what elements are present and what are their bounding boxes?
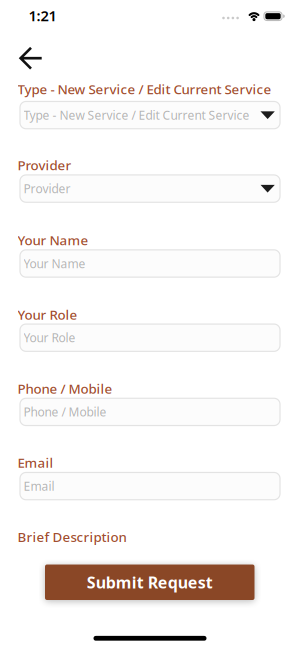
staticText: Provider bbox=[17, 156, 71, 174]
staticText: Phone / Mobile bbox=[23, 404, 106, 420]
staticText: Submit Request bbox=[87, 572, 213, 593]
staticText: Phone / Mobile bbox=[17, 380, 112, 397]
staticText: Email bbox=[17, 454, 53, 471]
staticText: 1:21 bbox=[28, 6, 56, 25]
button[interactable]: Your Role bbox=[20, 324, 280, 351]
staticText: Brief Description bbox=[17, 528, 126, 546]
button[interactable]: Your Name bbox=[20, 250, 280, 277]
staticText: Your Role bbox=[23, 330, 75, 346]
staticText: Type - New Service / Edit Current Servic… bbox=[17, 80, 271, 98]
staticText: Your Name bbox=[23, 255, 85, 271]
staticText: Your Name bbox=[17, 231, 88, 249]
button[interactable] bbox=[11, 38, 51, 78]
button[interactable]: Type - New Service / Edit Current Servic… bbox=[20, 101, 280, 129]
button[interactable]: Submit Request bbox=[45, 564, 254, 600]
staticText: Provider bbox=[23, 181, 70, 196]
staticText: Email bbox=[23, 478, 54, 494]
button[interactable]: Provider bbox=[20, 175, 280, 202]
button[interactable]: Phone / Mobile bbox=[20, 398, 280, 426]
staticText: Type - New Service / Edit Current Servic… bbox=[23, 107, 249, 123]
button[interactable]: Email bbox=[20, 472, 280, 500]
staticText: Your Role bbox=[17, 306, 77, 323]
